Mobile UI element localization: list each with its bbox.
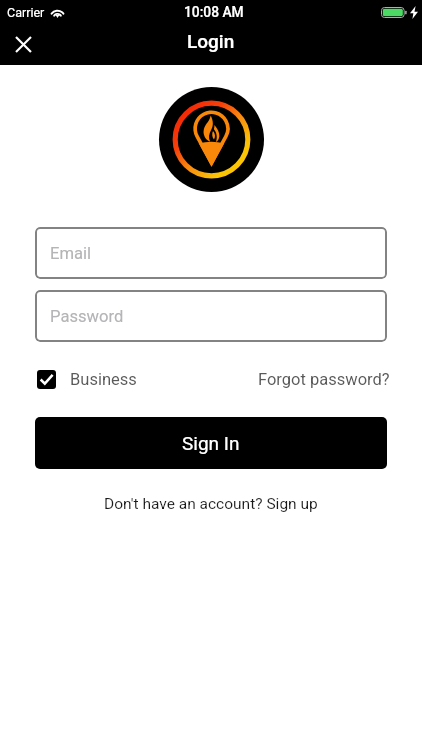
staticText: Don't have an account? Sign up [104,495,318,513]
button[interactable]: Close [4,25,42,63]
staticText: Login [187,30,235,52]
staticText: Password [50,307,124,326]
staticText: Sign In [182,432,240,454]
staticText: Carrier [7,5,45,20]
button[interactable]: Email [35,227,387,279]
staticText: Email [50,244,92,263]
button[interactable]: Don't have an account? Sign up [98,492,324,516]
button[interactable]: Sign In [35,417,387,469]
button[interactable]: Business [37,366,137,393]
button[interactable]: Forgot password? [258,366,390,393]
staticText: Forgot password? [258,370,390,389]
button[interactable]: Password [35,290,387,342]
staticText: Business [70,370,137,389]
staticText: 10:08 AM [184,4,244,20]
